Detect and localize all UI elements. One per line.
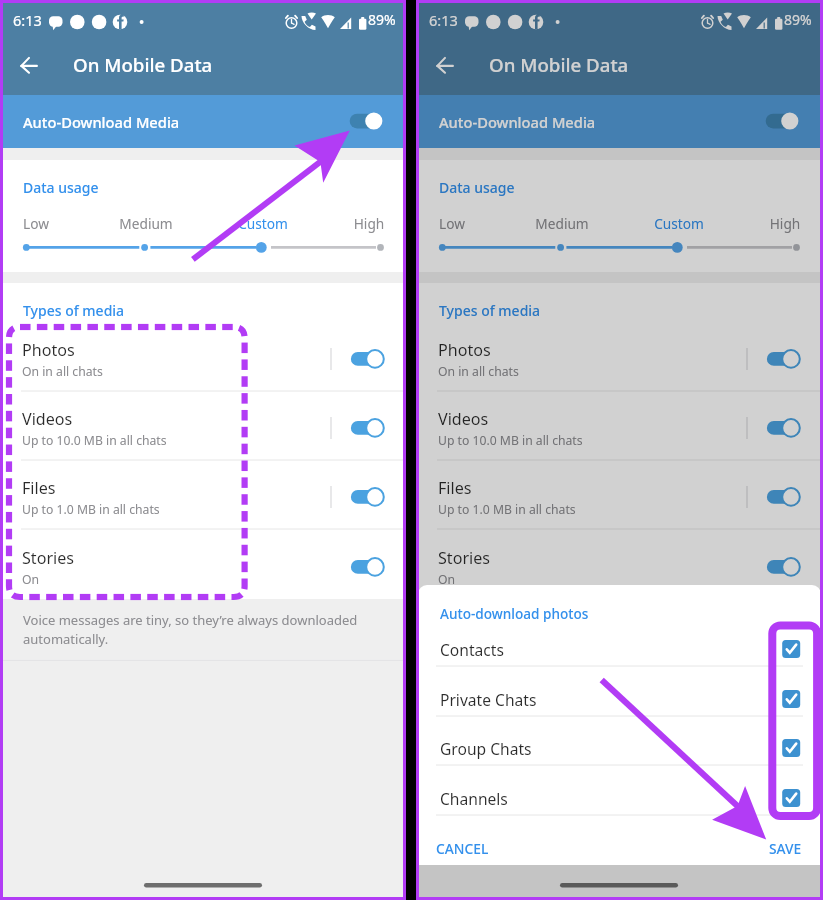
- staticText: Voice messages are tiny, so they’re alwa…: [23, 611, 358, 648]
- staticText: On: [22, 571, 40, 588]
- staticText: Photos: [438, 339, 491, 361]
- button[interactable]: Photos: [416, 322, 823, 391]
- button[interactable]: Contacts: [418, 617, 821, 667]
- button[interactable]: Videos: [416, 391, 823, 460]
- staticText: Data usage: [23, 178, 99, 197]
- button[interactable]: Photos: [0, 322, 406, 391]
- staticText: Videos: [22, 408, 73, 430]
- staticText: 89%: [368, 10, 396, 29]
- staticText: Voice messages are tiny, so they’re alwa…: [439, 611, 774, 648]
- staticText: On Mobile Data: [489, 52, 629, 77]
- button[interactable]: Files: [416, 460, 823, 529]
- button[interactable]: SAVE: [767, 824, 815, 865]
- staticText: 6:13: [429, 10, 458, 30]
- button[interactable]: CANCEL: [426, 824, 518, 865]
- staticText: Private Chats: [440, 689, 537, 710]
- staticText: High: [333, 214, 405, 233]
- staticText: Low: [439, 214, 465, 233]
- button[interactable]: Group Chats: [418, 716, 821, 766]
- staticText: Types of media: [23, 301, 125, 320]
- staticText: Data usage: [439, 178, 515, 197]
- staticText: On in all chats: [22, 363, 103, 380]
- staticText: Up to 1.0 MB in all chats: [438, 501, 576, 518]
- staticText: SAVE: [769, 839, 802, 858]
- staticText: Types of media: [439, 301, 541, 320]
- staticText: Medium: [110, 214, 182, 233]
- staticText: On: [438, 571, 456, 588]
- staticText: Medium: [526, 214, 598, 233]
- staticText: Low: [23, 214, 49, 233]
- staticText: Channels: [440, 788, 508, 809]
- staticText: Custom: [227, 214, 299, 233]
- staticText: Contacts: [440, 639, 504, 660]
- staticText: Stories: [438, 547, 490, 569]
- button[interactable]: Videos: [0, 391, 406, 460]
- button[interactable]: Stories: [0, 530, 406, 599]
- staticText: On Mobile Data: [73, 52, 213, 77]
- staticText: High: [749, 214, 821, 233]
- button[interactable]: Files: [0, 460, 406, 529]
- staticText: On in all chats: [438, 363, 519, 380]
- staticText: Auto-Download Media: [23, 112, 180, 132]
- staticText: Up to 10.0 MB in all chats: [438, 432, 583, 449]
- button[interactable]: Back: [425, 46, 465, 86]
- button[interactable]: Auto-Download Media: [0, 95, 406, 148]
- staticText: Auto-download photos: [440, 604, 589, 623]
- button[interactable]: Private Chats: [418, 667, 821, 717]
- button[interactable]: Auto-Download Media: [416, 95, 823, 148]
- staticText: Files: [438, 477, 472, 499]
- staticText: Videos: [438, 408, 489, 430]
- button[interactable]: Channels: [418, 766, 821, 816]
- staticText: CANCEL: [436, 839, 489, 858]
- staticText: 89%: [784, 10, 812, 29]
- staticText: Custom: [643, 214, 715, 233]
- button[interactable]: Back: [9, 46, 49, 86]
- staticText: Auto-Download Media: [439, 112, 596, 132]
- staticText: Up to 10.0 MB in all chats: [22, 432, 167, 449]
- staticText: Stories: [22, 547, 74, 569]
- staticText: Group Chats: [440, 738, 532, 759]
- staticText: Photos: [22, 339, 75, 361]
- staticText: 6:13: [13, 10, 42, 30]
- button[interactable]: Stories: [416, 530, 823, 599]
- staticText: Files: [22, 477, 56, 499]
- staticText: Up to 1.0 MB in all chats: [22, 501, 160, 518]
